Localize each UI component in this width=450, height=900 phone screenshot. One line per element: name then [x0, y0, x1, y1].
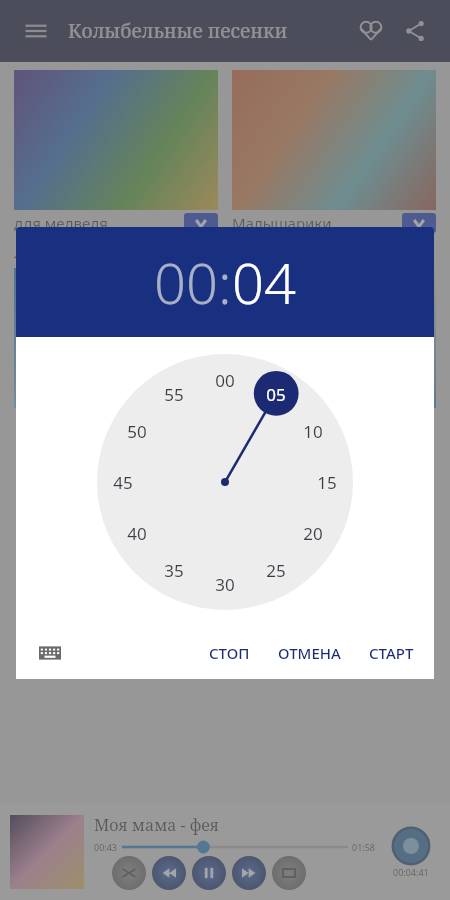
button[interactable]: Minute picker [97, 354, 353, 610]
button[interactable]: ОТМЕНА [272, 635, 347, 671]
staticText: для медведя [14, 213, 184, 233]
button[interactable]: Share [396, 12, 434, 50]
button[interactable]: 00: [154, 244, 232, 320]
staticText: Лео и Тиг [14, 242, 83, 262]
staticText: Малышарики [232, 213, 402, 233]
button[interactable]: 04 [232, 244, 296, 320]
staticText: 40 [127, 522, 147, 545]
button[interactable]: Pause [192, 856, 226, 890]
staticText: 00 [215, 369, 235, 392]
button[interactable]: для медведя [14, 70, 218, 236]
button[interactable]: Switch to text input [30, 633, 70, 673]
button[interactable]: Next [232, 856, 266, 890]
staticText: СТОП [209, 643, 250, 663]
button[interactable]: Repeat [272, 856, 306, 890]
staticText: 55 [164, 383, 184, 406]
button[interactable]: Favorite [352, 12, 390, 50]
staticText: 20 [303, 522, 323, 545]
staticText: 30 [215, 573, 235, 596]
button[interactable]: Shuffle [112, 856, 146, 890]
staticText: СТАРТ [369, 643, 414, 663]
staticText: 15 [317, 471, 337, 494]
button[interactable] [14, 268, 218, 408]
button[interactable]: Previous [152, 856, 186, 890]
staticText: 35 [164, 559, 184, 582]
staticText: 05 [266, 383, 286, 406]
staticText: 01:58 [352, 841, 376, 853]
staticText: 00:04:41 [393, 866, 429, 878]
staticText: 45 [113, 471, 133, 494]
button[interactable]: Album art [10, 815, 84, 889]
button[interactable] [232, 268, 436, 408]
staticText: ОТМЕНА [278, 643, 341, 663]
staticText: 50 [127, 420, 147, 443]
staticText: Моя мама - фея [94, 814, 219, 836]
staticText: Колыбельные песенки [68, 18, 288, 44]
button[interactable]: СТОП [203, 635, 256, 671]
staticText: 25 [266, 559, 286, 582]
staticText: 00:43 [94, 841, 118, 853]
button[interactable]: Малышарики [232, 70, 436, 236]
button[interactable]: Sleep timer [382, 826, 440, 878]
button[interactable]: СТАРТ [363, 635, 420, 671]
staticText: 10 [303, 420, 323, 443]
button[interactable]: Menu [16, 11, 56, 51]
